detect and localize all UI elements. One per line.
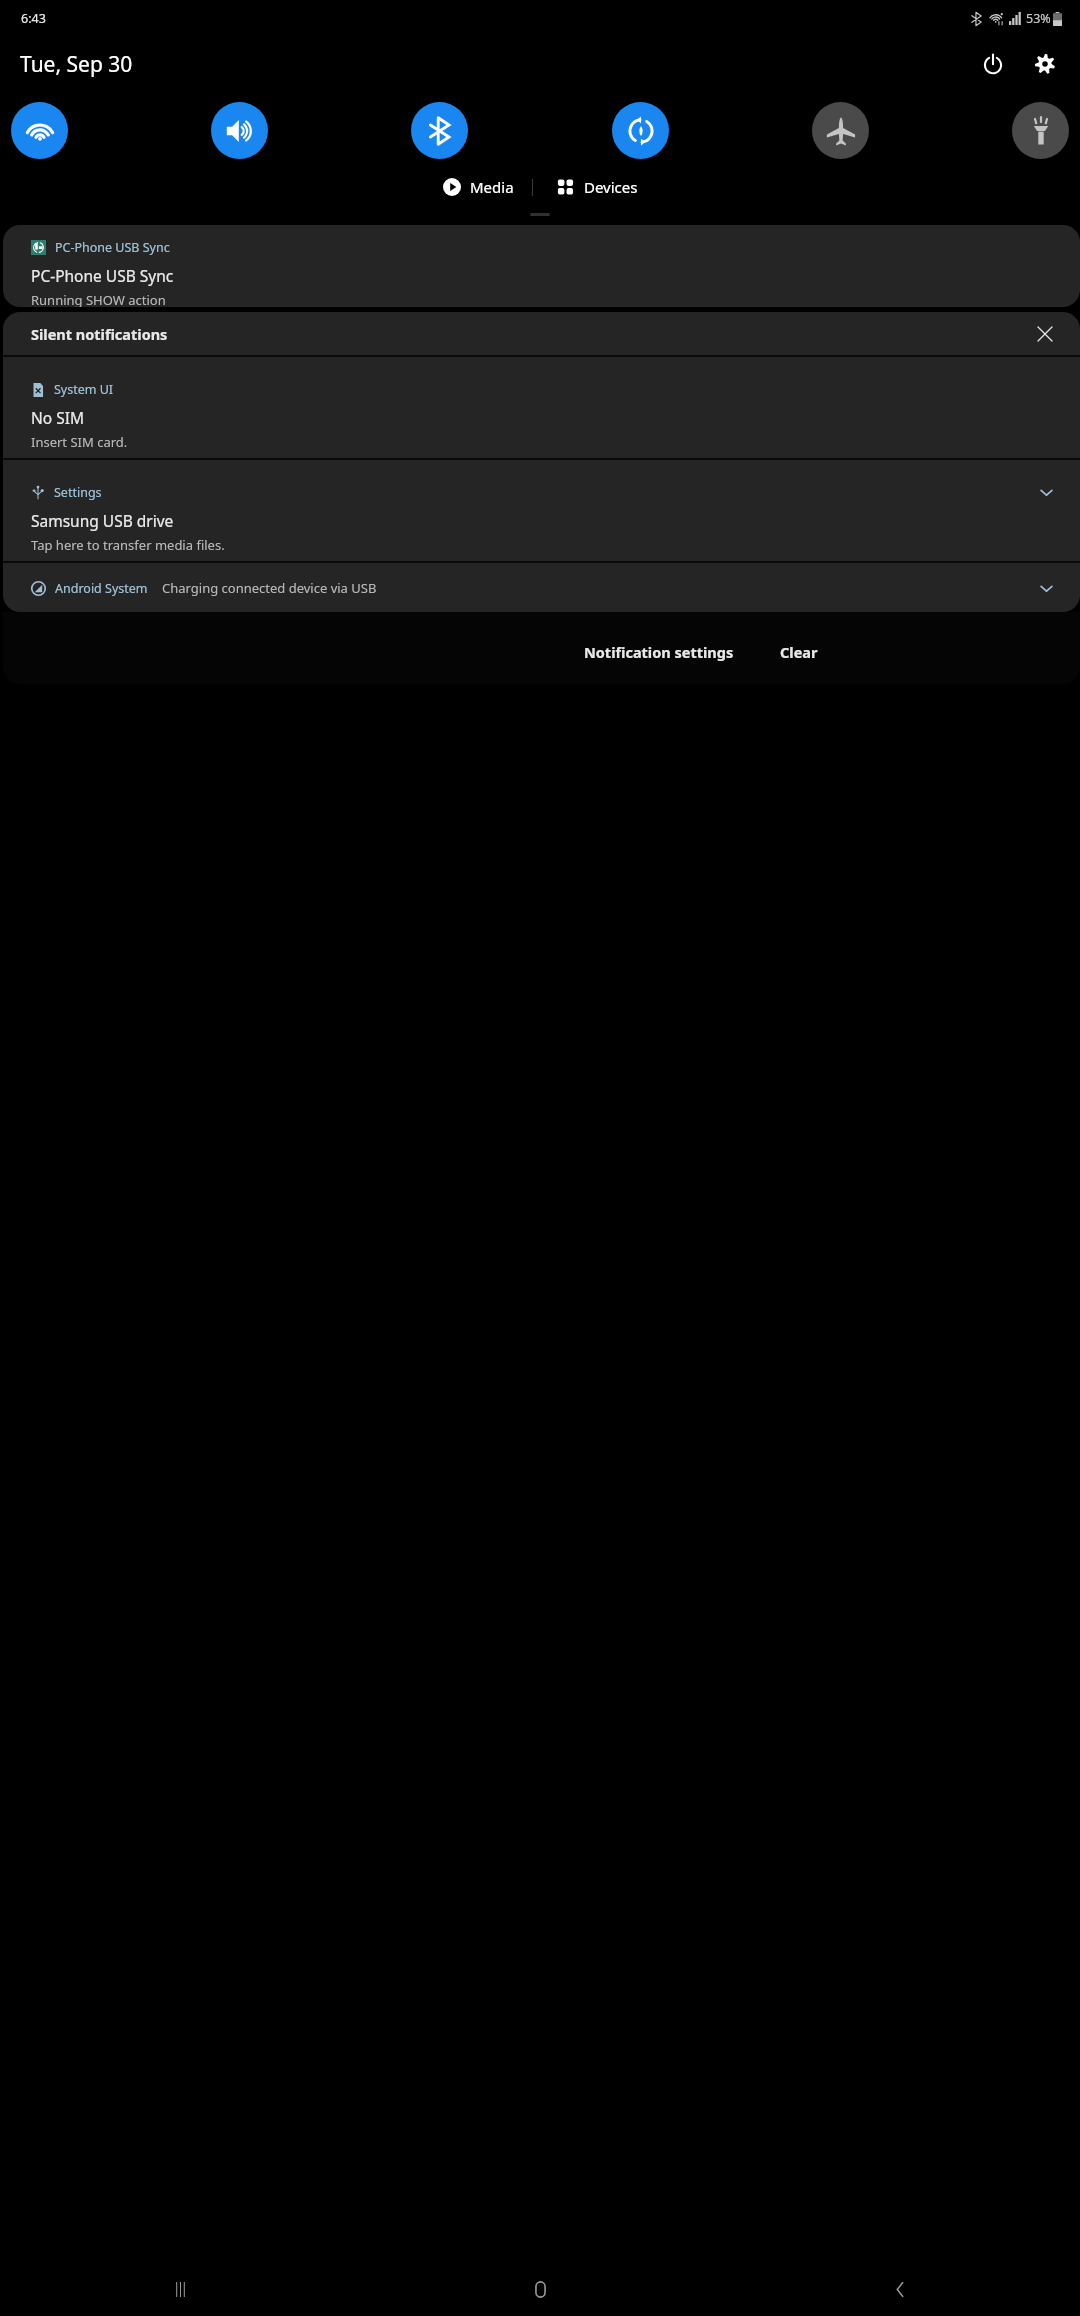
button[interactable]: Power	[972, 43, 1014, 85]
staticText: 53%	[1026, 10, 1051, 27]
staticText: 6:43	[21, 10, 46, 27]
button[interactable]: Back	[720, 2262, 1080, 2316]
staticText: Android System	[55, 580, 148, 597]
staticText: PC-Phone USB Sync	[31, 265, 174, 286]
staticText: Silent notifications	[31, 324, 168, 344]
button[interactable]: Settings	[1024, 43, 1066, 85]
button[interactable]: Flashlight	[1012, 102, 1069, 159]
button[interactable]: System UI	[3, 357, 1080, 458]
button[interactable]: Expand	[1032, 478, 1060, 506]
staticText: System UI	[54, 381, 114, 398]
staticText: Running SHOW action	[31, 291, 166, 307]
staticText: Devices	[584, 177, 638, 197]
button[interactable]: Home	[360, 2262, 720, 2316]
button[interactable]: Devices	[551, 173, 644, 201]
button[interactable]: Wi-Fi	[11, 102, 68, 159]
staticText: Clear	[780, 642, 818, 662]
button[interactable]: Silent notifications	[3, 312, 1080, 355]
staticText: Samsung USB drive	[31, 510, 174, 531]
button[interactable]: Auto rotate	[612, 102, 669, 159]
button[interactable]: Android System	[3, 563, 1080, 612]
staticText: Notification settings	[584, 642, 734, 662]
button[interactable]: Clear	[772, 634, 826, 670]
staticText: Tap here to transfer media files.	[31, 536, 225, 554]
staticText: Settings	[54, 484, 102, 501]
button[interactable]: Media	[437, 173, 520, 201]
button[interactable]: Settings	[3, 460, 1080, 561]
button[interactable]: Sound	[211, 102, 268, 159]
staticText: Charging connected device via USB	[162, 579, 377, 597]
button[interactable]: Airplane mode	[812, 102, 869, 159]
staticText: Media	[470, 177, 514, 197]
button[interactable]: Notification settings	[576, 634, 742, 670]
staticText: Tue, Sep 30	[20, 50, 133, 79]
staticText: No SIM	[31, 407, 85, 428]
button[interactable]: Bluetooth	[411, 102, 468, 159]
staticText: PC-Phone USB Sync	[55, 239, 170, 256]
button[interactable]: Recent apps	[0, 2262, 360, 2316]
staticText: Insert SIM card.	[31, 433, 128, 451]
button[interactable]: PC-Phone USB Sync	[3, 225, 1080, 307]
button[interactable]: Dismiss silent notifications	[1030, 319, 1060, 349]
button[interactable]: Expand	[1032, 574, 1060, 602]
